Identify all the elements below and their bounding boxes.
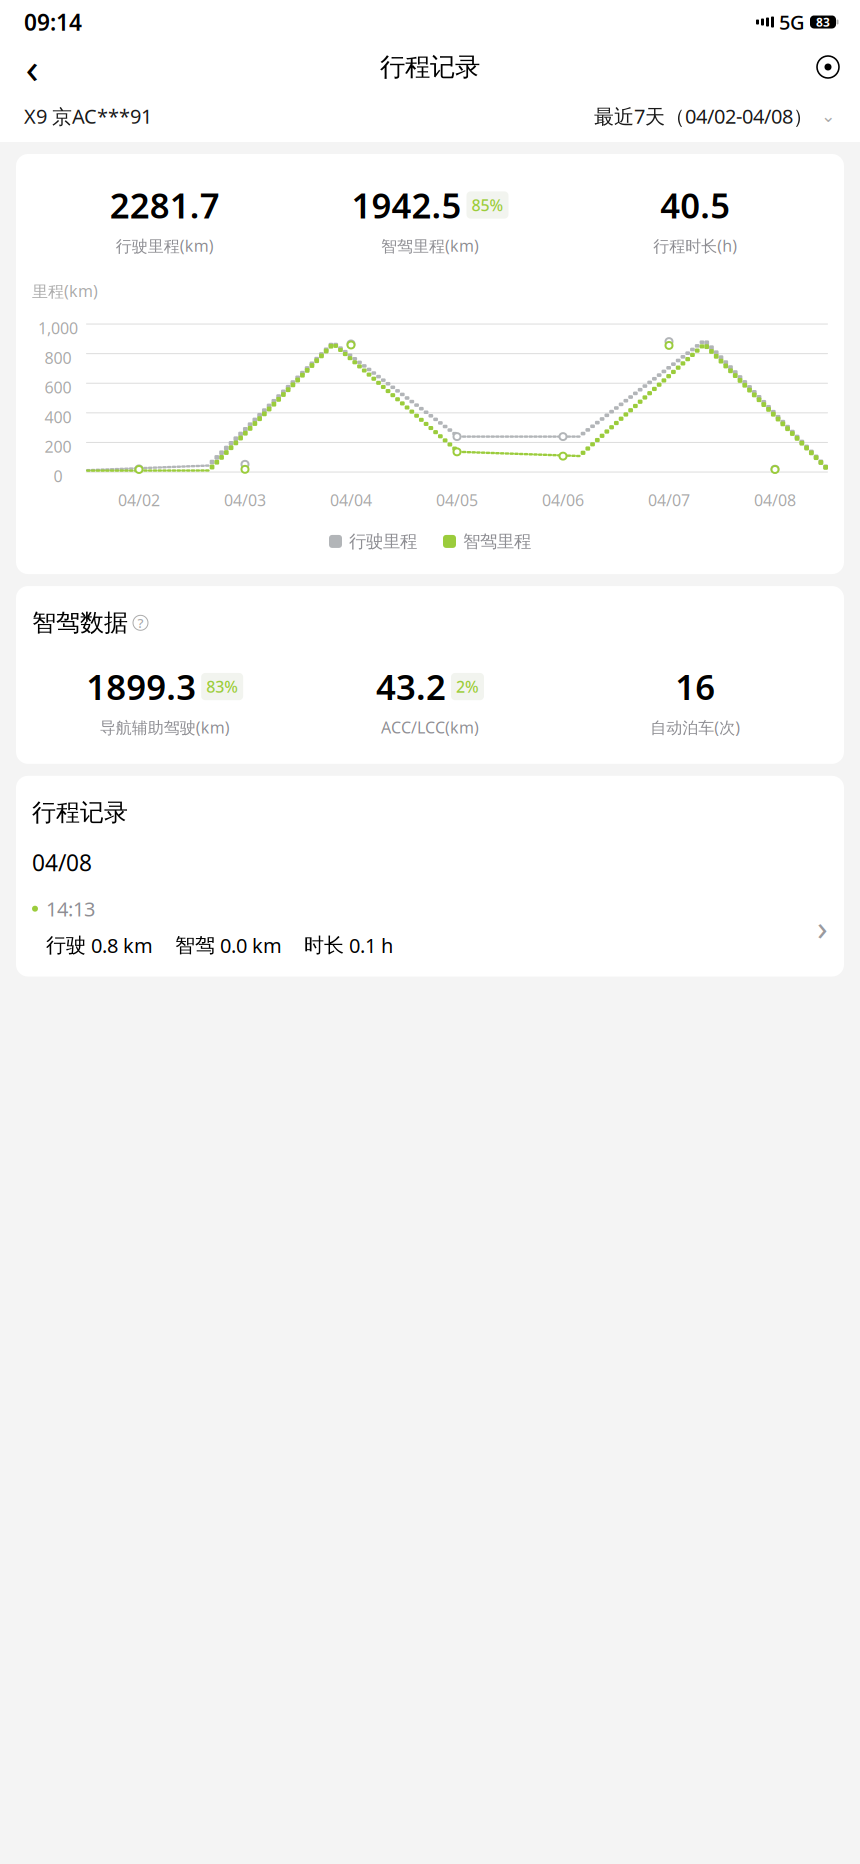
staticText: 5G (779, 9, 805, 35)
staticText: 智驾数据 (32, 608, 128, 638)
staticText: 行驶里程(km) (116, 235, 214, 256)
staticText: 1,000 (38, 317, 78, 339)
staticText: 最近7天（04/02-04/08） (594, 103, 813, 129)
staticText: 0.1 h (349, 932, 393, 959)
staticText: 行驶里程 (349, 531, 417, 552)
staticText: 400 (44, 406, 71, 427)
staticText: 04/05 (436, 489, 478, 511)
staticText: 04/08 (754, 489, 796, 511)
staticText: 04/06 (542, 489, 584, 511)
button[interactable]: 最近7天（04/02-04/08） (594, 95, 836, 137)
staticText: 导航辅助驾驶(km) (100, 717, 230, 738)
staticText: 83 (816, 14, 830, 30)
staticText: 04/07 (648, 489, 690, 511)
staticText: 行程记录 (32, 798, 128, 827)
staticText: 1942.5 (351, 182, 461, 228)
staticText: 09:14 (24, 7, 82, 37)
staticText: 智驾里程 (463, 531, 531, 552)
staticText: 智驾 (175, 933, 215, 958)
staticText: ⌄ (821, 106, 836, 126)
staticText: 行程时长(h) (653, 235, 737, 256)
staticText: 自动泊车(次) (650, 717, 740, 738)
button[interactable]: 14:13 (32, 877, 828, 976)
staticText: 14:13 (46, 895, 95, 922)
staticText: 04/04 (330, 489, 372, 511)
staticText: 智驾里程(km) (381, 235, 479, 256)
staticText: 04/03 (224, 489, 266, 511)
staticText: 2% (456, 676, 479, 697)
staticText: 时长 (304, 933, 344, 958)
staticText: ? (137, 614, 143, 632)
staticText: 200 (44, 436, 71, 457)
staticText: X9 京AC***91 (24, 103, 152, 129)
staticText: 04/08 (32, 847, 92, 877)
button[interactable]: X9 京AC***91 (24, 95, 152, 137)
staticText: 600 (44, 377, 71, 398)
button[interactable]: Back (10, 45, 54, 89)
staticText: 行驶 (46, 933, 86, 958)
staticText: 43.2 (376, 663, 446, 709)
staticText: 行程记录 (380, 51, 480, 82)
staticText: 40.5 (660, 182, 730, 228)
button[interactable]: About assisted driving data (133, 614, 148, 632)
staticText: 16 (675, 663, 715, 709)
staticText: 0.8 km (91, 932, 153, 959)
staticText: 83% (206, 676, 238, 697)
staticText: 0.0 km (220, 932, 282, 959)
staticText: 85% (471, 194, 503, 216)
staticText: 04/02 (118, 489, 160, 511)
staticText: › (817, 904, 828, 950)
staticText: 1899.3 (86, 663, 196, 709)
staticText: 800 (44, 347, 71, 368)
staticText: 里程(km) (32, 280, 98, 301)
staticText: 0 (53, 465, 62, 487)
staticText: ‹ (25, 39, 38, 95)
button[interactable]: Settings (806, 45, 850, 89)
staticText: ACC/LCC(km) (381, 717, 479, 738)
staticText: 2281.7 (110, 182, 220, 228)
